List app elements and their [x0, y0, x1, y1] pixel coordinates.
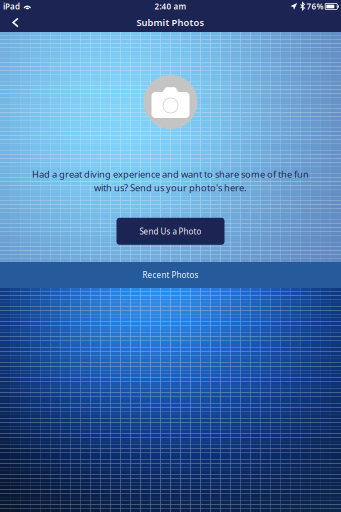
staticText: 76%	[306, 1, 323, 12]
staticText: Recent Photos	[142, 270, 198, 280]
staticText: with us? Send us your photo's here.	[94, 181, 247, 194]
staticText: iPad	[3, 1, 20, 12]
button[interactable]: Back	[0, 14, 31, 30]
staticText: Submit Photos	[136, 16, 204, 29]
button[interactable]: Send Us a Photo	[116, 218, 224, 245]
staticText: Had a great diving experience and want t…	[32, 168, 309, 180]
staticText: Send Us a Photo	[139, 226, 201, 237]
staticText: 2:40 am	[154, 1, 186, 12]
